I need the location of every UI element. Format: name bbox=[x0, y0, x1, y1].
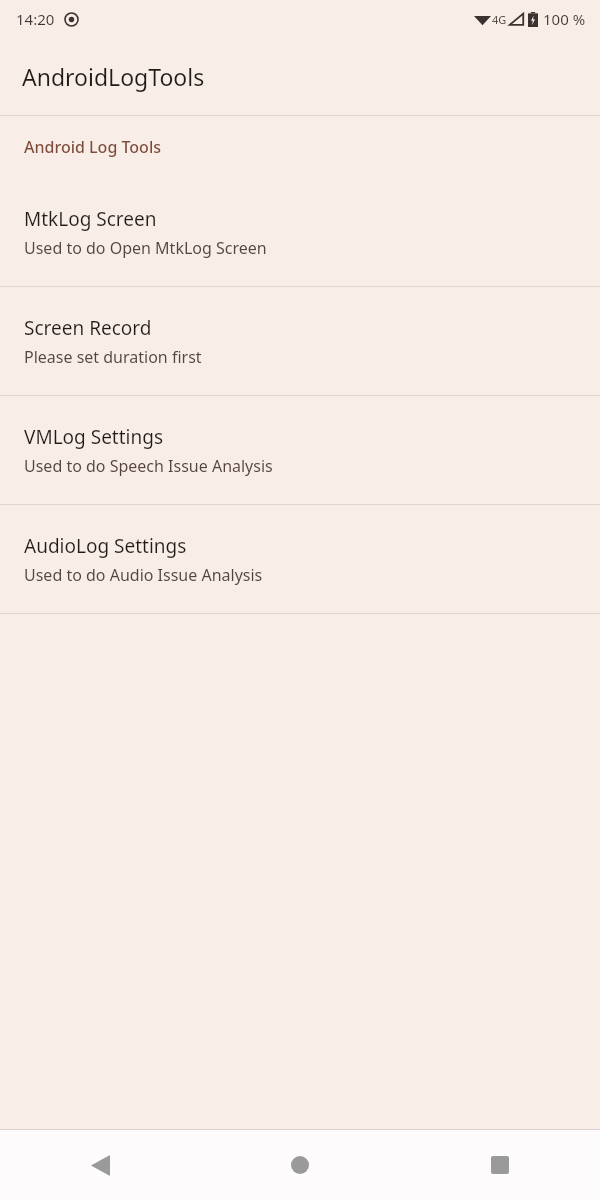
button[interactable]: AudioLog Settings bbox=[0, 505, 600, 613]
staticText: Used to do Speech Issue Analysis bbox=[24, 455, 273, 477]
staticText: Used to do Open MtkLog Screen bbox=[24, 237, 267, 259]
button[interactable]: Back bbox=[0, 1130, 200, 1200]
staticText: AudioLog Settings bbox=[24, 533, 187, 559]
button[interactable]: Home bbox=[200, 1130, 400, 1200]
staticText: Screen Record bbox=[24, 315, 152, 341]
staticText: Please set duration first bbox=[24, 346, 202, 368]
button[interactable]: VMLog Settings bbox=[0, 396, 600, 504]
staticText: VMLog Settings bbox=[24, 424, 164, 450]
staticText: 100 % bbox=[543, 9, 586, 29]
button[interactable]: Recent apps bbox=[400, 1130, 600, 1200]
staticText: 14:20 bbox=[16, 9, 55, 29]
staticText: AndroidLogTools bbox=[22, 61, 205, 92]
staticText: Android Log Tools bbox=[24, 136, 161, 158]
button[interactable]: MtkLog Screen bbox=[0, 178, 600, 286]
button[interactable]: Screen Record bbox=[0, 287, 600, 395]
staticText: MtkLog Screen bbox=[24, 206, 157, 232]
staticText: 4G bbox=[492, 12, 507, 27]
staticText: Used to do Audio Issue Analysis bbox=[24, 564, 263, 586]
